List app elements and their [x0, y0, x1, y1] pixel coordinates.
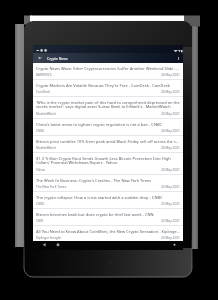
staticText: 24 May 2021: [161, 168, 180, 172]
staticText: The New York Times: [36, 185, 67, 189]
button[interactable]: The crypto collapse: How a crisis starte…: [33, 192, 183, 208]
staticText: 23 May 2021: [161, 202, 180, 206]
staticText: The Week In Business: Crypto's Crashes -…: [36, 178, 152, 183]
staticText: CoinDesk: [36, 90, 51, 94]
button[interactable]: The Week In Business: Crypto's Crashes -…: [33, 175, 183, 191]
staticText: $1.3 Trillion Crypto Rout Sends Growth L…: [36, 156, 180, 166]
staticText: The crypto collapse: How a crisis starte…: [36, 195, 163, 200]
button[interactable]: Crypto News Wave: Ether Cryptocurrencies…: [33, 63, 183, 79]
staticText: Crypto Markets Are Volatile Because They…: [36, 83, 170, 88]
button[interactable]: Back: [33, 53, 47, 63]
staticText: Yahoo: [36, 168, 46, 172]
staticText: 23 May 2021: [161, 185, 180, 189]
staticText: BARRON'S: [36, 73, 52, 77]
staticText: CNBC: [36, 202, 45, 206]
button[interactable]: Crypto Markets Are Volatile Because They…: [33, 80, 183, 96]
staticText: CNN: [36, 219, 43, 223]
button[interactable]: China's latest move to tighten crypto re…: [33, 119, 183, 135]
staticText: Kiplinger Insight: [36, 236, 61, 240]
staticText: 23 May 2021: [161, 219, 180, 223]
staticText: China's latest move to tighten crypto re…: [36, 122, 163, 127]
staticText: Bitcoin becomes bank but does crypto be …: [36, 212, 154, 217]
staticText: 'Who is the crypto market pain of this h…: [36, 100, 180, 110]
button[interactable]: 'Who is the crypto market pain of this h…: [33, 97, 183, 118]
staticText: All You Need to Know About CoinMoni, the…: [36, 229, 180, 234]
staticText: Crypto News Wave: Ether Cryptocurrencies…: [36, 66, 180, 71]
staticText: 24 May 2021: [161, 129, 180, 133]
button[interactable]: All You Need to Know About CoinMoni, the…: [33, 226, 183, 242]
staticText: Bitcoin price tumbles 10% from peak amid…: [36, 139, 180, 144]
staticText: 23 May 2021: [161, 236, 180, 240]
button[interactable]: $1.3 Trillion Crypto Rout Sends Growth L…: [33, 153, 183, 174]
staticText: 24 May 2021: [161, 146, 180, 150]
button[interactable]: Bitcoin becomes bank but does crypto be …: [33, 209, 183, 225]
staticText: Crypto News: [47, 56, 173, 61]
staticText: MarketWatch: [36, 146, 56, 150]
staticText: 24 May 2021: [161, 73, 180, 77]
staticText: 24 May 2021: [161, 90, 180, 94]
button[interactable]: Bitcoin price tumbles 10% from peak amid…: [33, 136, 183, 152]
staticText: CNBC: [36, 129, 45, 133]
staticText: 24 May 2021: [161, 112, 180, 116]
button[interactable]: More options: [173, 53, 183, 63]
staticText: MarketWatch: [36, 112, 56, 116]
